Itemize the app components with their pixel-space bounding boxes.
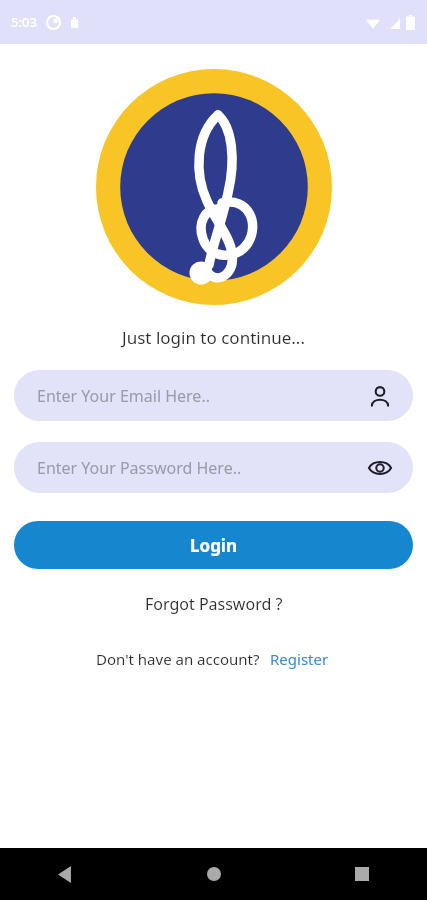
staticText: Don't have an account? <box>96 649 260 669</box>
button[interactable]: Email field <box>14 370 413 421</box>
staticText: Forgot Password ? <box>145 593 283 615</box>
staticText: Just login to continue... <box>122 326 305 349</box>
button[interactable]: Forgot Password ? <box>133 587 295 621</box>
staticText: 5:03 <box>11 13 37 31</box>
button[interactable]: Recent apps <box>341 853 383 895</box>
staticText: Enter Your Email Here.. <box>37 385 210 407</box>
staticText: Enter Your Password Here.. <box>37 457 242 479</box>
button[interactable]: Password field <box>14 442 413 493</box>
button[interactable]: Back <box>44 853 86 895</box>
staticText: Register <box>270 649 329 669</box>
button[interactable]: Register <box>267 646 332 672</box>
button[interactable]: Home <box>193 853 235 895</box>
staticText: Login <box>190 534 238 557</box>
button[interactable]: Login <box>14 521 413 569</box>
